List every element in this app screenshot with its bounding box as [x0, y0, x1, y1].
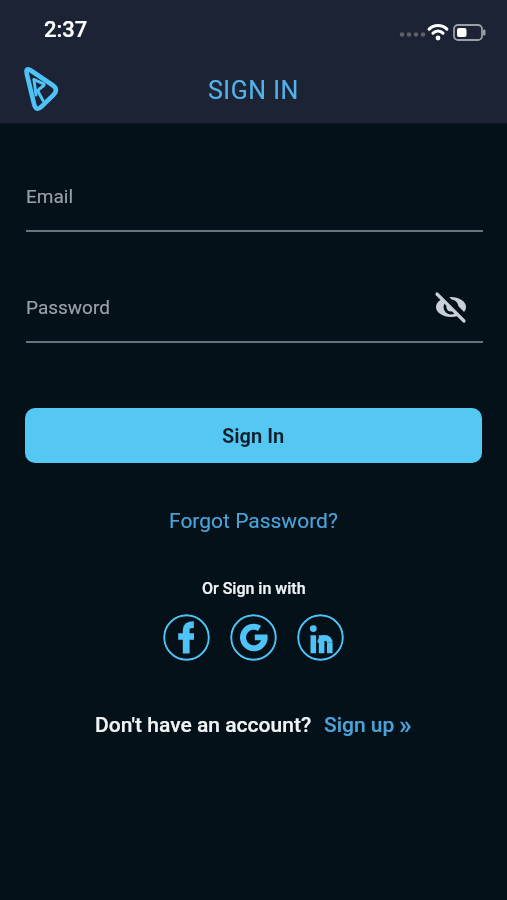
button[interactable]: Email — [0, 180, 507, 240]
button[interactable] — [230, 614, 277, 661]
staticText: Or Sign in with — [202, 579, 306, 598]
button[interactable]: Sign In — [25, 408, 482, 463]
staticText: » — [399, 710, 412, 740]
staticText: Sign up — [324, 713, 395, 738]
staticText: SIGN IN — [208, 76, 299, 105]
staticText: Sign In — [222, 424, 285, 447]
staticText: Email — [26, 185, 74, 207]
staticText: Don't have an account? — [95, 713, 312, 738]
button[interactable]: Sign up — [324, 710, 412, 740]
button[interactable] — [163, 614, 210, 661]
button[interactable] — [436, 293, 466, 321]
button[interactable] — [297, 614, 344, 661]
staticText: Password — [26, 296, 110, 318]
button[interactable]: Password — [0, 291, 507, 351]
staticText: 2:37 — [44, 17, 88, 43]
button[interactable]: Forgot Password? — [169, 509, 338, 534]
